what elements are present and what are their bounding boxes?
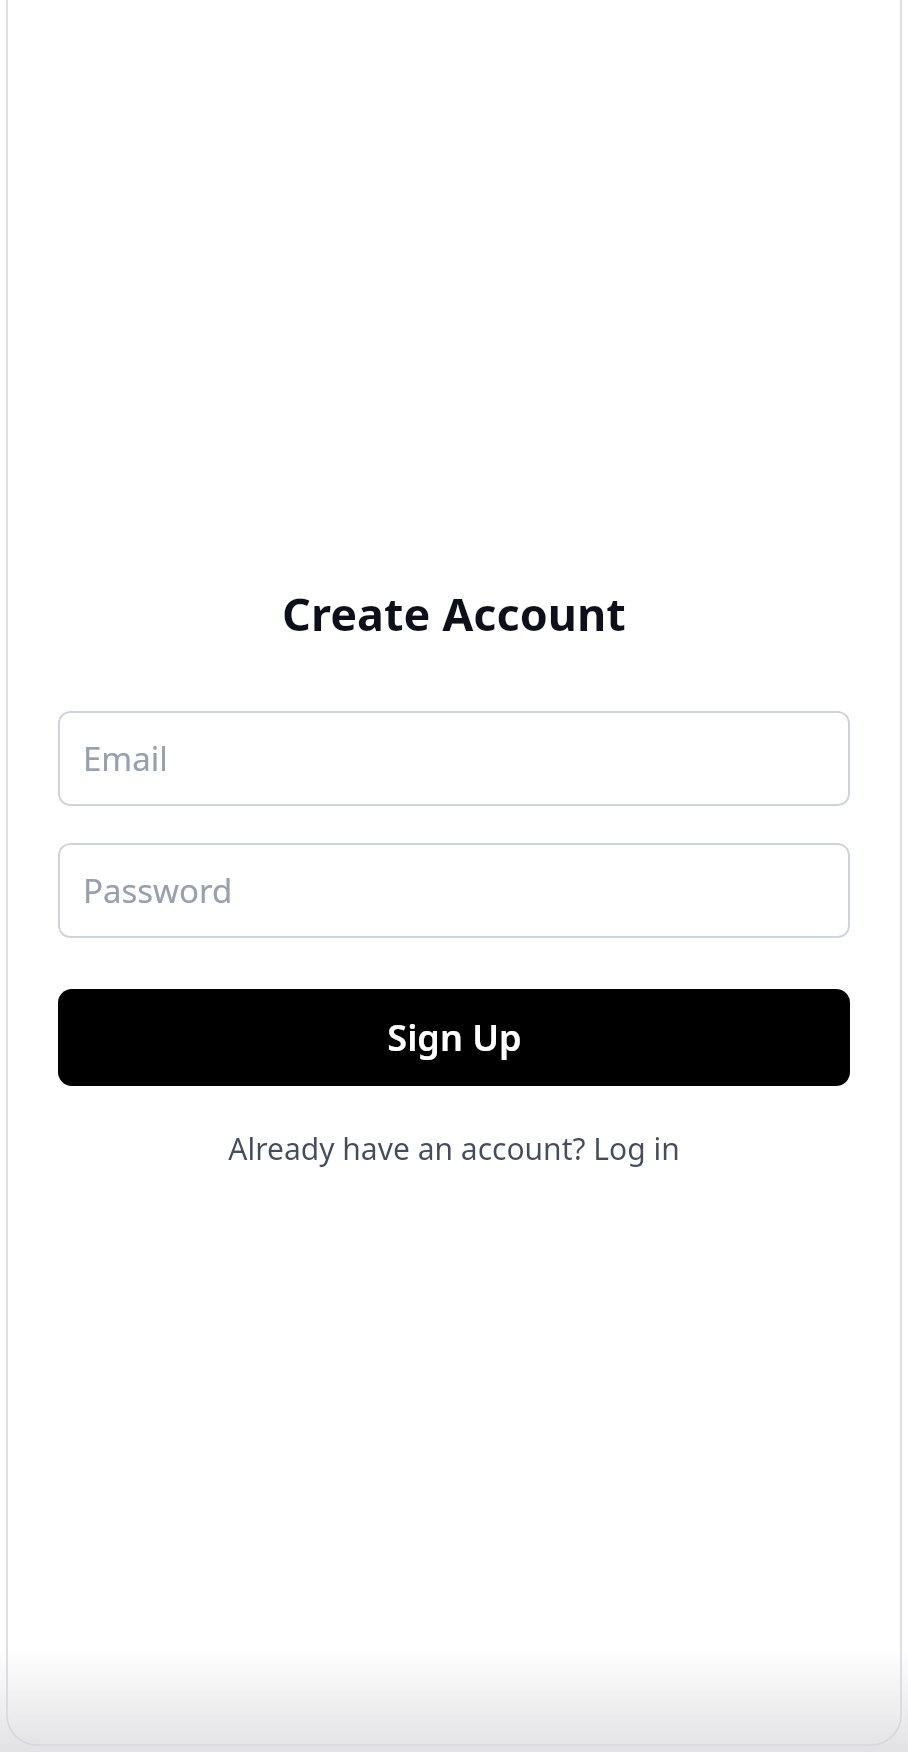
staticText: Email <box>83 736 168 781</box>
staticText: Password <box>83 868 233 913</box>
button[interactable]: Email <box>58 711 850 806</box>
staticText: Sign Up <box>387 1013 522 1062</box>
staticText: Create Account <box>282 583 626 644</box>
button[interactable]: Sign Up <box>58 989 850 1086</box>
button[interactable]: Already have an account? Log in <box>220 1124 688 1173</box>
button[interactable]: Password <box>58 843 850 938</box>
